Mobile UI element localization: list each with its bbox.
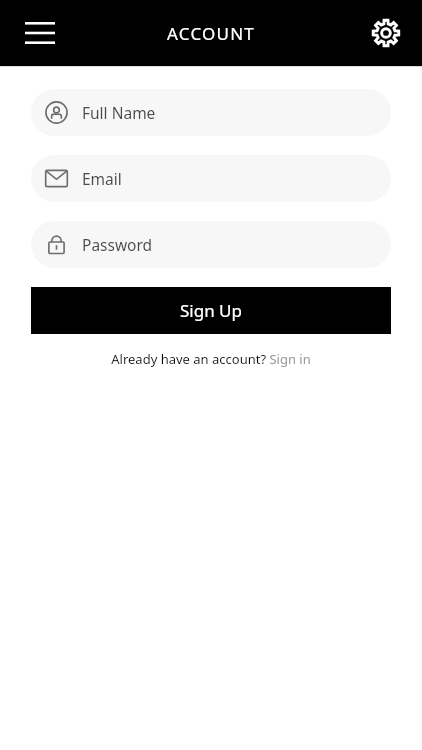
button[interactable]: Menu [18, 11, 62, 55]
button[interactable]: Full Name [31, 89, 391, 136]
staticText: Password [82, 234, 153, 255]
button[interactable]: Already have an account? Sign in [111, 350, 311, 368]
staticText: ACCOUNT [167, 22, 255, 45]
button[interactable]: Sign Up [31, 287, 391, 334]
staticText: Sign Up [180, 299, 242, 322]
staticText: Already have an account? Sign in [111, 350, 311, 368]
button[interactable]: Settings [365, 12, 407, 54]
button[interactable]: Password [31, 221, 391, 268]
staticText: Full Name [82, 102, 156, 123]
button[interactable]: Email [31, 155, 391, 202]
staticText: Email [82, 168, 122, 189]
